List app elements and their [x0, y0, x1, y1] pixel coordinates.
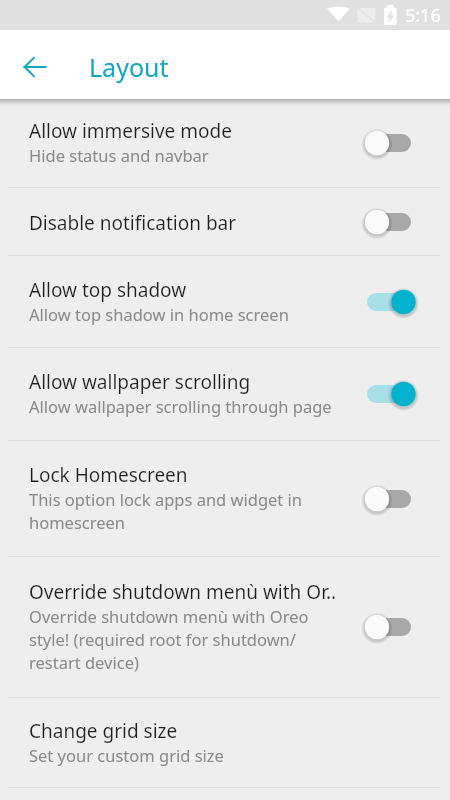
staticText: Disable notification bar — [29, 210, 237, 236]
button[interactable]: Disable notification bar — [0, 188, 450, 255]
staticText: Allow immersive mode — [29, 118, 232, 144]
staticText: Override shutdown menù with Oreo style! … — [29, 605, 340, 674]
staticText: Lock Homescreen — [29, 462, 188, 488]
button[interactable]: Allow top shadow — [0, 256, 450, 347]
button[interactable]: Change grid size — [0, 698, 450, 787]
button[interactable]: Toggle off — [360, 482, 418, 516]
staticText: Allow wallpaper scrolling — [29, 369, 251, 395]
button[interactable]: Toggle off — [360, 126, 418, 160]
button[interactable]: Toggle off — [360, 205, 418, 239]
button[interactable]: Toggle off — [360, 610, 418, 644]
button[interactable]: Toggle on — [360, 377, 418, 411]
staticText: This option lock apps and widget in home… — [29, 488, 340, 534]
staticText: Override shutdown menù with Or.. — [29, 579, 337, 605]
staticText: Set your custom grid size — [29, 744, 224, 766]
staticText: 5:16 — [405, 3, 441, 28]
button[interactable]: Allow wallpaper scrolling — [0, 348, 450, 440]
button[interactable]: Toggle on — [360, 285, 418, 319]
staticText: Change grid size — [29, 718, 178, 744]
staticText: Allow wallpaper scrolling through page — [29, 395, 332, 417]
button[interactable]: Allow immersive mode — [0, 99, 450, 187]
staticText: Allow top shadow — [29, 277, 187, 303]
button[interactable]: Lock Homescreen — [0, 441, 450, 556]
staticText: Allow top shadow in home screen — [29, 303, 289, 325]
button[interactable]: Override shutdown menù with Or.. — [0, 557, 450, 697]
button[interactable]: Back — [0, 32, 69, 101]
staticText: Layout — [89, 50, 169, 84]
staticText: Hide status and navbar — [29, 144, 209, 166]
